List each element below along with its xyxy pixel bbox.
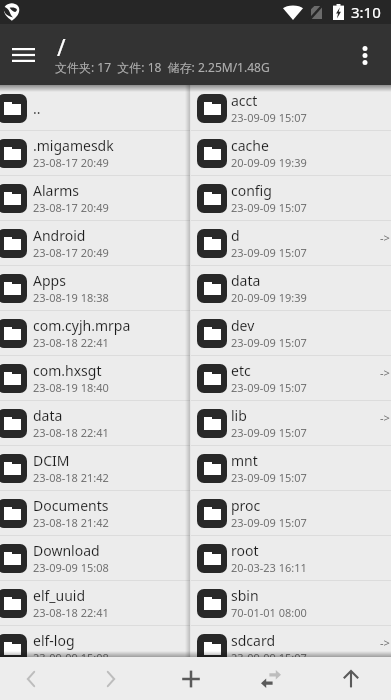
button[interactable]: com.cyjh.mrpa [0, 311, 190, 355]
staticText: 70-01-01 08:00 [231, 605, 307, 620]
staticText: Documents [33, 496, 109, 515]
staticText: 23-08-18 22:41 [33, 605, 109, 620]
staticText: etc [231, 361, 251, 380]
button[interactable]: Forward [80, 657, 142, 700]
button[interactable]: elf_uuid [0, 581, 190, 625]
button[interactable]: config [191, 176, 391, 220]
button[interactable]: .migamesdk [0, 131, 190, 175]
staticText: elf_uuid [33, 586, 86, 605]
button[interactable]: root [191, 536, 391, 580]
button[interactable]: Alarms [0, 176, 190, 220]
button[interactable]: etc [191, 356, 391, 400]
button[interactable]: data [191, 266, 391, 310]
staticText: 23-08-18 22:41 [33, 425, 109, 440]
staticText: 23-09-09 15:07 [231, 200, 307, 215]
button[interactable]: More options [341, 31, 389, 79]
staticText: acct [231, 91, 258, 110]
staticText: 23-09-09 15:08 [33, 560, 109, 575]
staticText: sdcard [231, 631, 276, 650]
staticText: 23-08-17 20:49 [33, 155, 109, 170]
button[interactable]: elf-log [0, 626, 190, 657]
staticText: lib [231, 406, 247, 425]
staticText: 23-09-09 15:07 [231, 515, 307, 530]
staticText: DCIM [33, 451, 70, 470]
staticText: -> [380, 635, 390, 650]
staticText: 20-09-09 19:39 [231, 155, 307, 170]
staticText: -> [380, 365, 390, 380]
staticText: 23-09-09 15:07 [231, 650, 307, 657]
staticText: 文件夹: 17 文件: 18 储存: 2.25M/1.48G [55, 59, 270, 75]
staticText: sbin [231, 586, 259, 605]
staticText: d [231, 226, 240, 245]
button[interactable]: Menu [0, 32, 46, 78]
staticText: 23-08-17 20:49 [33, 245, 109, 260]
button[interactable]: Back [0, 657, 62, 700]
staticText: cache [231, 136, 269, 155]
staticText: config [231, 181, 272, 200]
button[interactable]: DCIM [0, 446, 190, 490]
button[interactable]: d [191, 221, 391, 265]
staticText: 23-08-18 21:42 [33, 515, 109, 530]
staticText: 23-09-09 15:07 [231, 425, 307, 440]
button[interactable]: .. [0, 86, 190, 130]
button[interactable]: Android [0, 221, 190, 265]
staticText: Android [33, 226, 86, 245]
staticText: elf-log [33, 631, 75, 650]
staticText: 23-09-09 15:07 [231, 335, 307, 350]
button[interactable]: com.hxsgt [0, 356, 190, 400]
staticText: com.hxsgt [33, 361, 102, 380]
staticText: 23-08-19 18:38 [33, 290, 109, 305]
staticText: mnt [231, 451, 258, 470]
staticText: 23-09-09 15:07 [231, 470, 307, 485]
staticText: 3:10 [351, 2, 381, 22]
button[interactable]: acct [191, 86, 391, 130]
staticText: 20-09-09 19:39 [231, 290, 307, 305]
staticText: -> [380, 410, 390, 425]
button[interactable]: sdcard [191, 626, 391, 657]
button[interactable]: lib [191, 401, 391, 445]
staticText: 20-03-23 16:11 [231, 560, 307, 575]
button[interactable]: Documents [0, 491, 190, 535]
staticText: data [231, 271, 261, 290]
staticText: 23-09-09 15:08 [33, 650, 109, 657]
staticText: .. [33, 99, 41, 118]
staticText: Alarms [33, 181, 79, 200]
staticText: proc [231, 496, 261, 515]
staticText: Apps [33, 271, 66, 290]
button[interactable]: cache [191, 131, 391, 175]
staticText: 23-09-09 15:07 [231, 110, 307, 125]
button[interactable]: Apps [0, 266, 190, 310]
button[interactable]: mnt [191, 446, 391, 490]
button[interactable]: sbin [191, 581, 391, 625]
staticText: 23-08-18 21:42 [33, 470, 109, 485]
staticText: 23-08-19 18:40 [33, 380, 109, 395]
button[interactable]: proc [191, 491, 391, 535]
staticText: 23-08-17 20:49 [33, 200, 109, 215]
staticText: root [231, 541, 259, 560]
staticText: .migamesdk [33, 136, 114, 155]
staticText: dev [231, 316, 255, 335]
button[interactable]: Go up [320, 657, 382, 700]
staticText: 23-09-09 15:07 [231, 245, 307, 260]
staticText: 23-08-18 22:41 [33, 335, 109, 350]
staticText: -> [380, 230, 390, 245]
staticText: 23-09-09 15:07 [231, 380, 307, 395]
button[interactable]: Switch panel [240, 657, 302, 700]
staticText: data [33, 406, 63, 425]
staticText: Download [33, 541, 100, 560]
button[interactable]: New folder [160, 657, 222, 700]
button[interactable]: data [0, 401, 190, 445]
staticText: / [57, 31, 66, 62]
staticText: com.cyjh.mrpa [33, 316, 131, 335]
button[interactable]: dev [191, 311, 391, 355]
button[interactable]: Download [0, 536, 190, 580]
